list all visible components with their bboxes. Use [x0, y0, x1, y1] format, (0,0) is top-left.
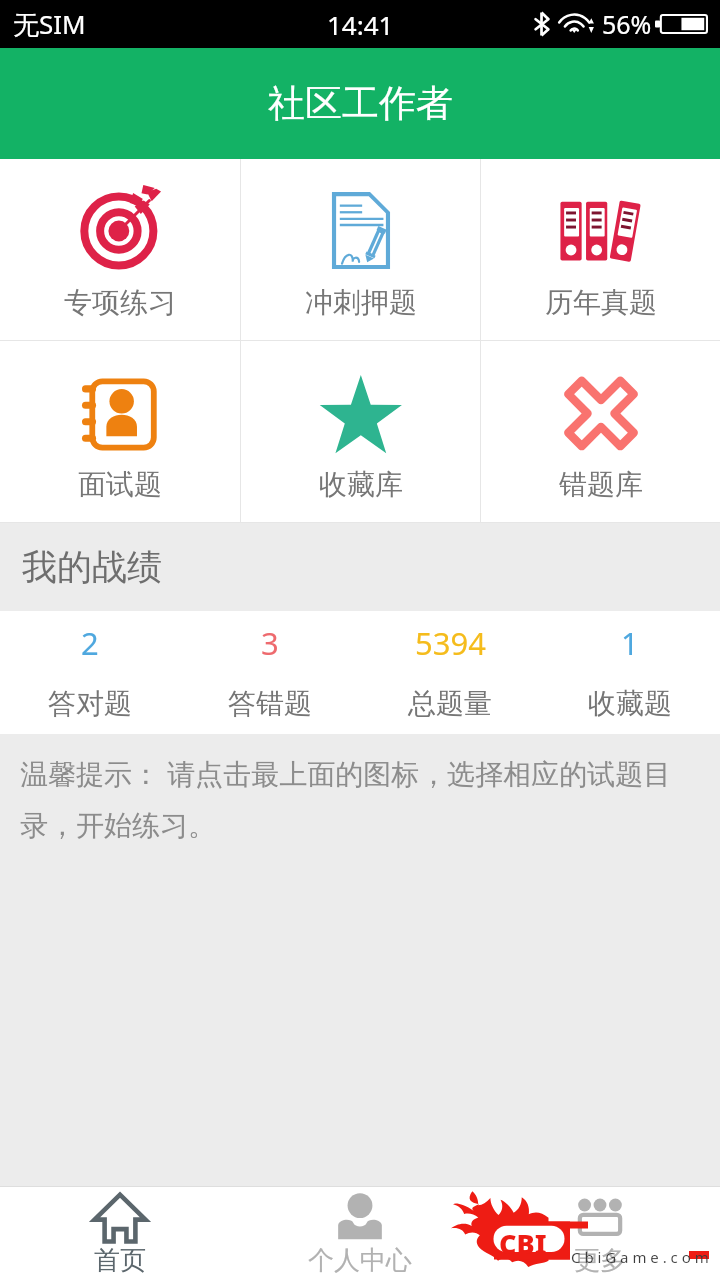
staticText: 错题库 [559, 467, 643, 502]
staticText: 14:41 [327, 7, 394, 42]
button[interactable]: 个人中心 [240, 1187, 480, 1280]
staticText: 社区工作者 [268, 80, 453, 127]
staticText: 2 [81, 622, 99, 664]
button[interactable]: 冲刺押题 [241, 159, 480, 340]
staticText: 更多 [574, 1244, 626, 1277]
staticText: 收藏题 [588, 686, 672, 721]
staticText: 总题量 [408, 686, 492, 721]
staticText: 历年真题 [545, 285, 657, 320]
button[interactable]: 1 [540, 611, 720, 734]
staticText: 3 [261, 622, 279, 664]
staticText: 温馨提示： 请点击最上面的图标，选择相应的试题目录，开始练习。 [20, 754, 696, 843]
button[interactable]: 3 [180, 611, 360, 734]
button[interactable]: 面试题 [0, 341, 240, 522]
button[interactable]: 2 [0, 611, 180, 734]
staticText: 我的战绩 [22, 545, 162, 589]
staticText: 5394 [415, 622, 486, 664]
button[interactable]: 更多 [480, 1187, 720, 1280]
button[interactable]: 专项练习 [0, 159, 240, 340]
staticText: 1 [621, 622, 639, 664]
staticText: 收藏库 [319, 467, 403, 502]
button[interactable]: 5394 [360, 611, 540, 734]
staticText: CBI [499, 1225, 547, 1262]
staticText: 面试题 [78, 467, 162, 502]
staticText: 答错题 [228, 686, 312, 721]
button[interactable]: 错题库 [481, 341, 720, 522]
staticText: C b i G a m e . c o m [571, 1247, 709, 1267]
staticText: 专项练习 [64, 285, 176, 320]
button[interactable]: 历年真题 [481, 159, 720, 340]
staticText: 个人中心 [308, 1244, 412, 1277]
staticText: 56% [602, 7, 652, 41]
staticText: 首页 [94, 1244, 146, 1277]
staticText: 冲刺押题 [305, 285, 417, 320]
staticText: 答对题 [48, 686, 132, 721]
button[interactable]: 首页 [0, 1187, 240, 1280]
staticText: 无SIM [13, 6, 86, 42]
button[interactable]: 收藏库 [241, 341, 480, 522]
